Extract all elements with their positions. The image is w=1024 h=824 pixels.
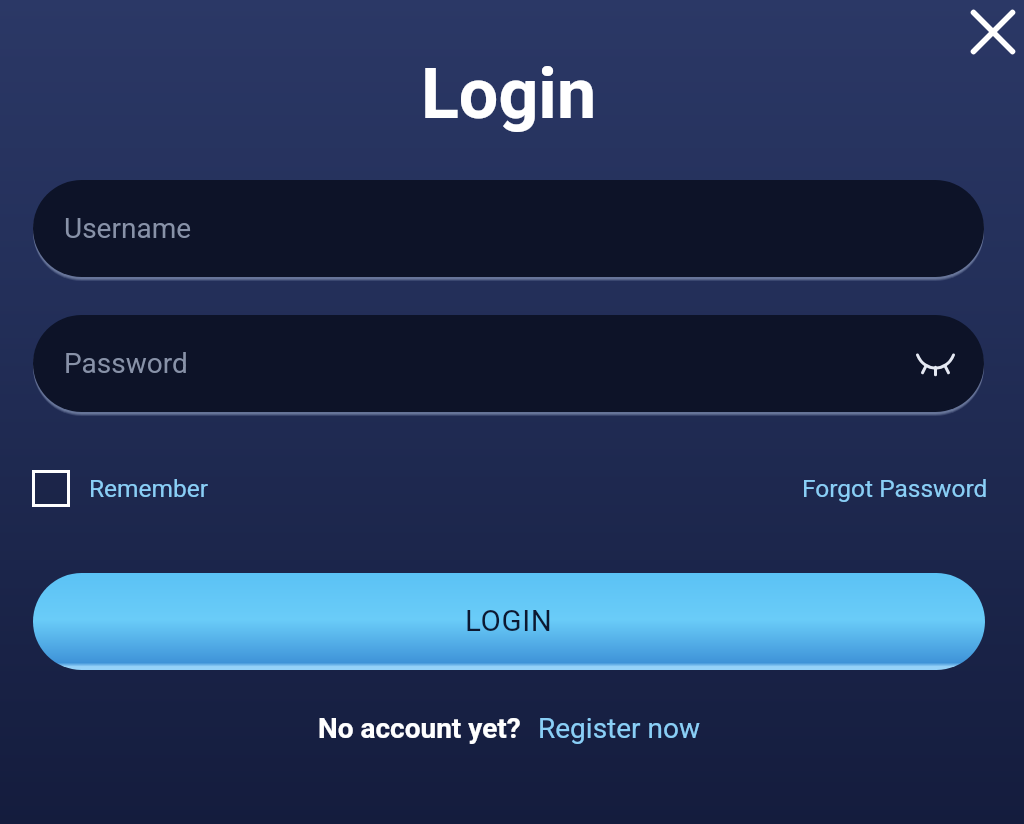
button[interactable]: LOGIN — [33, 573, 985, 670]
staticText: Password — [64, 347, 188, 380]
staticText: Forgot Password — [802, 474, 988, 503]
staticText: Remember — [89, 474, 209, 503]
staticText: LOGIN — [465, 604, 553, 639]
button[interactable]: Close — [957, 0, 1024, 64]
button[interactable]: Show password — [915, 344, 955, 384]
staticText: Login — [421, 53, 597, 135]
button[interactable]: Remember me checkbox — [32, 464, 209, 512]
button[interactable]: Password — [33, 315, 984, 412]
button[interactable]: Forgot Password — [802, 464, 988, 512]
staticText: Username — [64, 212, 192, 245]
staticText: No account yet? — [318, 712, 521, 745]
other: Remember me checkbox — [32, 470, 70, 507]
button[interactable]: Username — [33, 180, 984, 277]
button[interactable]: Register now — [538, 704, 700, 752]
staticText: Register now — [538, 712, 700, 745]
